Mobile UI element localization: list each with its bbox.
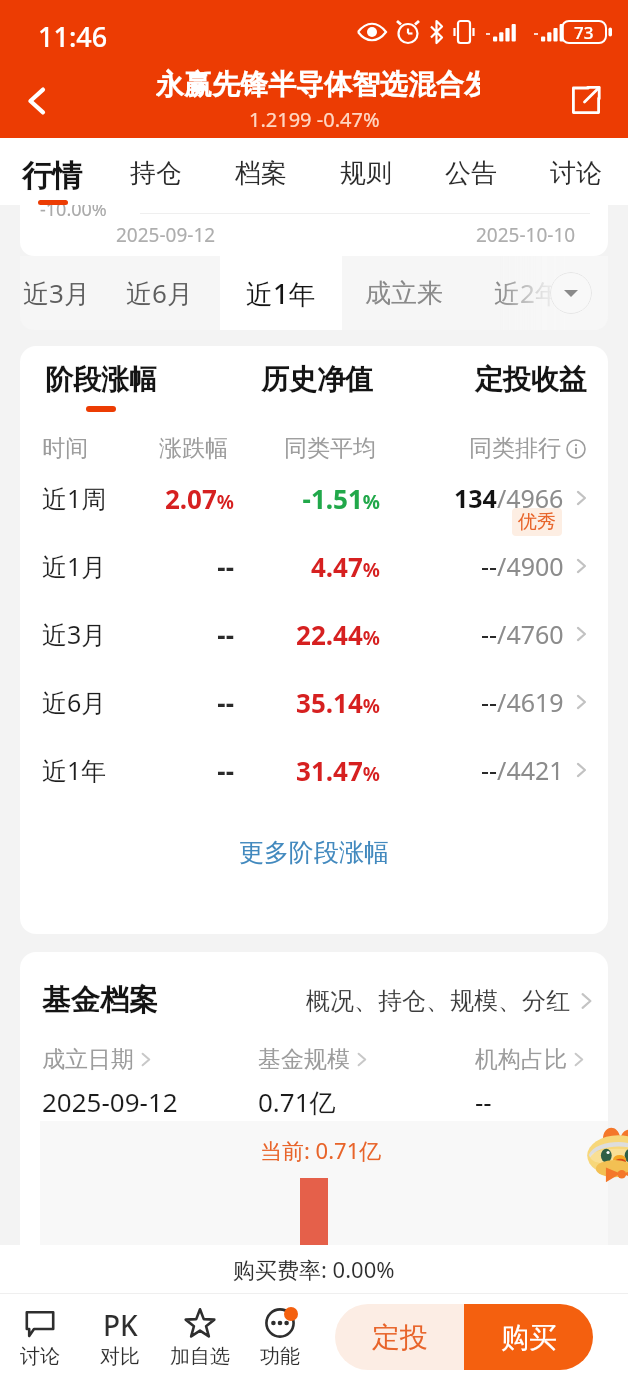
staticText: 2025-09-12 [42,1084,178,1119]
staticText: 近1年 [42,753,107,787]
staticText: 成立来 [365,277,443,310]
staticText: 同类排行 [469,434,561,463]
staticText: -10.00% [40,205,107,222]
button[interactable]: 成立日期 [42,1045,178,1119]
staticText: 近1年 [246,275,316,312]
other: Assistant [580,1124,628,1186]
staticText: 时间 [42,434,88,463]
staticText: --/4900 [481,549,564,583]
staticText: 阶段涨幅 [45,362,157,397]
button[interactable]: 近3月 [20,600,608,668]
button[interactable]: PK [80,1294,160,1380]
staticText: 11:46 [38,18,108,55]
staticText: 档案 [235,157,287,190]
button[interactable]: 近2年 [466,256,608,330]
button[interactable]: 持仓 [104,157,208,205]
staticText: --/4760 [481,617,564,651]
staticText: 历史净值 [261,362,373,397]
button[interactable]: 定投 [335,1304,464,1370]
button[interactable]: 历史净值 [258,362,376,412]
staticText: 1.2199 -0.47% [249,106,380,133]
staticText: 近6月 [126,275,193,311]
button[interactable]: 成立来 [342,256,466,330]
staticText: -- [110,685,234,720]
staticText: -- [110,617,234,652]
staticText: 机构占比 [475,1045,567,1074]
button[interactable]: 近6月 [98,256,220,330]
staticText: 永赢先锋半导体智选混合发起 [156,67,480,102]
staticText: 近3月 [42,617,107,651]
button[interactable]: 定投收益 [472,362,590,412]
staticText: --/4421 [481,753,564,787]
staticText: -- [110,753,234,788]
staticText: 近1月 [42,549,107,583]
staticText: 概况、持仓、规模、分红 [306,986,570,1016]
button[interactable]: 近1月 [20,532,608,600]
staticText: 当前: 0.71亿 [260,1135,382,1165]
button[interactable]: 近1周 [20,464,608,532]
staticText: 公告 [445,157,497,190]
staticText: 近2年 [494,275,561,311]
staticText: 功能 [260,1344,300,1369]
button[interactable]: 基金档案 [42,982,596,1019]
staticText: 涨跌幅 [108,434,228,463]
staticText: 讨论 [20,1344,60,1369]
button[interactable]: Share [558,72,614,128]
staticText: 购买 [501,1320,557,1355]
staticText: 31.47% [242,753,380,788]
staticText: -- [110,549,234,584]
staticText: 73 [574,21,594,44]
staticText: 0.71亿 [258,1084,336,1120]
staticText: 2025-09-12 [116,222,216,248]
staticText: 持仓 [130,157,182,190]
button[interactable]: 行情 [0,157,104,205]
staticText: --/4619 [481,685,564,719]
button[interactable]: 近1年 [220,256,342,330]
staticText: 22.44% [242,617,380,652]
button[interactable]: 机构占比 [475,1045,587,1119]
button[interactable]: 讨论 [0,1294,80,1380]
staticText: PK [103,1306,138,1340]
staticText: 2025-10-10 [476,222,576,248]
button[interactable]: 公告 [418,157,523,205]
staticText: 134/4966 [454,481,564,515]
staticText: 同类平均 [240,434,376,463]
staticText: 加自选 [170,1344,230,1369]
staticText: 优秀 [518,510,556,534]
button[interactable]: Back [8,72,66,130]
staticText: 定投收益 [475,362,587,397]
staticText: 近1周 [42,481,107,515]
staticText: 讨论 [550,157,602,190]
staticText: 对比 [100,1344,140,1369]
button[interactable]: 加自选 [160,1294,240,1380]
staticText: 更多阶段涨幅 [239,837,389,868]
staticText: 定投 [372,1320,428,1355]
staticText: 基金规模 [258,1045,350,1074]
staticText: 行情 [22,157,82,195]
button[interactable]: More ranges [550,272,592,314]
button[interactable]: 购买 [464,1304,593,1370]
staticText: 基金档案 [42,982,158,1019]
button[interactable]: 讨论 [523,157,628,205]
staticText: -1.51% [242,481,380,516]
staticText: -- [475,1084,492,1119]
staticText: 规则 [340,157,392,190]
staticText: 4.47% [242,549,380,584]
staticText: 近6月 [42,685,107,719]
staticText: 成立日期 [42,1045,134,1074]
button[interactable]: 规则 [313,157,418,205]
staticText: 近3月 [23,275,90,311]
button[interactable]: 档案 [208,157,313,205]
staticText: 35.14% [242,685,380,720]
staticText: 购买费率: 0.00% [233,1254,395,1284]
button[interactable]: 近6月 [20,668,608,736]
button[interactable]: 近1年 [20,736,608,804]
button[interactable]: 基金规模 [258,1045,370,1120]
staticText: 2.07% [110,481,234,516]
button[interactable]: 阶段涨幅 [42,362,160,412]
button[interactable]: 更多阶段涨幅 [20,824,608,880]
button[interactable]: 近3月 [20,256,98,330]
button[interactable]: 功能 [240,1294,320,1380]
